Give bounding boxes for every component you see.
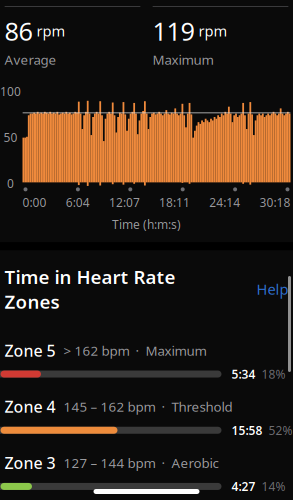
staticText: Help bbox=[256, 279, 288, 299]
staticText: 145 – 162 bpm · Threshold bbox=[63, 398, 232, 415]
staticText: Zone 4 bbox=[4, 396, 55, 417]
staticText: Average bbox=[4, 51, 56, 68]
staticText: 127 – 144 bpm · Aerobic bbox=[63, 454, 218, 472]
staticText: 15:58 bbox=[231, 422, 262, 438]
button[interactable]: Zone 5 bbox=[0, 340, 293, 382]
staticText: > 162 bpm · Maximum bbox=[63, 342, 206, 359]
staticText: Zone 3 bbox=[4, 452, 55, 473]
staticText: 18:11 bbox=[159, 194, 190, 210]
staticText: rpm bbox=[36, 21, 65, 41]
button[interactable]: Zone 4 bbox=[0, 396, 293, 438]
staticText: 50 bbox=[3, 129, 17, 145]
staticText: 30:18 bbox=[259, 194, 290, 210]
staticText: 6:04 bbox=[66, 194, 90, 210]
staticText: Time in Heart Rate Zones bbox=[4, 264, 175, 314]
staticText: 24:14 bbox=[209, 194, 240, 210]
staticText: 12:07 bbox=[109, 194, 140, 210]
staticText: Zone 5 bbox=[4, 340, 55, 361]
staticText: 0:00 bbox=[22, 194, 46, 210]
staticText: Time (h:m:s) bbox=[112, 216, 181, 232]
staticText: 14% bbox=[261, 478, 285, 494]
staticText: 100 bbox=[0, 83, 21, 99]
staticText: 18% bbox=[261, 366, 285, 382]
staticText: 52% bbox=[268, 422, 292, 438]
button[interactable]: Zone 3 bbox=[0, 452, 293, 494]
staticText: 5:34 bbox=[231, 366, 255, 382]
staticText: 119 bbox=[152, 14, 194, 48]
button[interactable]: Help bbox=[256, 279, 288, 299]
staticText: 86 bbox=[4, 14, 32, 48]
staticText: rpm bbox=[198, 21, 227, 41]
staticText: Maximum bbox=[152, 51, 213, 68]
staticText: 0 bbox=[7, 175, 14, 191]
staticText: 4:27 bbox=[231, 478, 255, 494]
